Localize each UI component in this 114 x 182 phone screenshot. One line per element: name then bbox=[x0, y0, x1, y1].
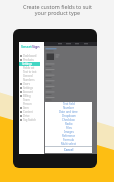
button[interactable]: Products bbox=[19, 58, 40, 62]
staticText: Text field bbox=[63, 102, 75, 106]
staticText: Checkbox bbox=[62, 118, 75, 122]
button[interactable]: Users bbox=[19, 82, 40, 86]
staticText: Drive bbox=[23, 114, 30, 118]
staticText: Settings bbox=[23, 86, 33, 90]
button[interactable]: Checkbox bbox=[45, 118, 92, 122]
button[interactable]: Person bbox=[19, 102, 40, 106]
button[interactable]: Settings bbox=[19, 86, 40, 90]
staticText: Products bbox=[23, 58, 34, 62]
staticText: Person bbox=[23, 102, 32, 106]
staticText: Text to text bbox=[23, 70, 37, 74]
staticText: Date and time bbox=[59, 110, 78, 114]
button[interactable]: Number bbox=[45, 106, 92, 110]
staticText: Reference bbox=[62, 134, 76, 138]
staticText: Files bbox=[66, 126, 72, 130]
staticText: Tag Switch bbox=[23, 118, 36, 122]
staticText: Content bbox=[23, 110, 33, 114]
button[interactable]: Multi select bbox=[45, 142, 92, 146]
staticText: Fields set bbox=[23, 66, 35, 70]
button[interactable]: Tag Switch bbox=[19, 118, 40, 122]
staticText: General bbox=[23, 74, 33, 78]
button[interactable]: Reference bbox=[45, 134, 92, 138]
button[interactable]: Billing bbox=[19, 94, 40, 98]
button[interactable]: Date and time bbox=[45, 110, 92, 114]
staticText: Cancel bbox=[64, 148, 74, 152]
button[interactable]: Drive bbox=[19, 114, 40, 118]
staticText: Number bbox=[63, 106, 74, 110]
staticText: Radio bbox=[65, 122, 73, 126]
button[interactable]: Fields set bbox=[19, 66, 40, 70]
staticText: Item bbox=[23, 106, 29, 110]
staticText: Sign bbox=[32, 44, 40, 49]
button[interactable]: Text field bbox=[45, 102, 92, 106]
staticText: Users bbox=[23, 82, 30, 86]
staticText: Formula bbox=[63, 138, 74, 142]
button[interactable]: Team bbox=[19, 98, 40, 102]
button[interactable]: Formula bbox=[45, 138, 92, 142]
staticText: Create custom fields to suit your produc… bbox=[23, 3, 92, 17]
staticText: Dashboard bbox=[23, 54, 37, 58]
staticText: Team bbox=[23, 98, 30, 102]
staticText: Smart bbox=[21, 44, 32, 49]
button[interactable]: Content bbox=[19, 110, 40, 114]
button[interactable]: Item bbox=[19, 106, 40, 110]
button[interactable]: Numbers bbox=[19, 78, 40, 82]
button[interactable]: Settings bbox=[19, 62, 40, 66]
button[interactable]: Dropdown bbox=[45, 114, 92, 118]
button[interactable]: Text to text bbox=[19, 70, 40, 74]
button[interactable]: Cancel bbox=[45, 147, 92, 152]
button[interactable]: Files bbox=[45, 126, 92, 130]
button[interactable]: Radio bbox=[45, 122, 92, 126]
staticText: Numbers bbox=[23, 78, 35, 82]
staticText: Billing bbox=[23, 94, 31, 98]
staticText: Images bbox=[64, 130, 74, 134]
staticText: Settings bbox=[22, 62, 32, 66]
button[interactable]: Images bbox=[45, 130, 92, 134]
button[interactable]: Account bbox=[19, 90, 40, 94]
button[interactable]: General bbox=[19, 74, 40, 78]
staticText: Account bbox=[23, 90, 33, 94]
button[interactable]: Dashboard bbox=[19, 54, 40, 58]
staticText: Dropdown bbox=[62, 114, 76, 118]
staticText: Multi select bbox=[61, 142, 77, 146]
